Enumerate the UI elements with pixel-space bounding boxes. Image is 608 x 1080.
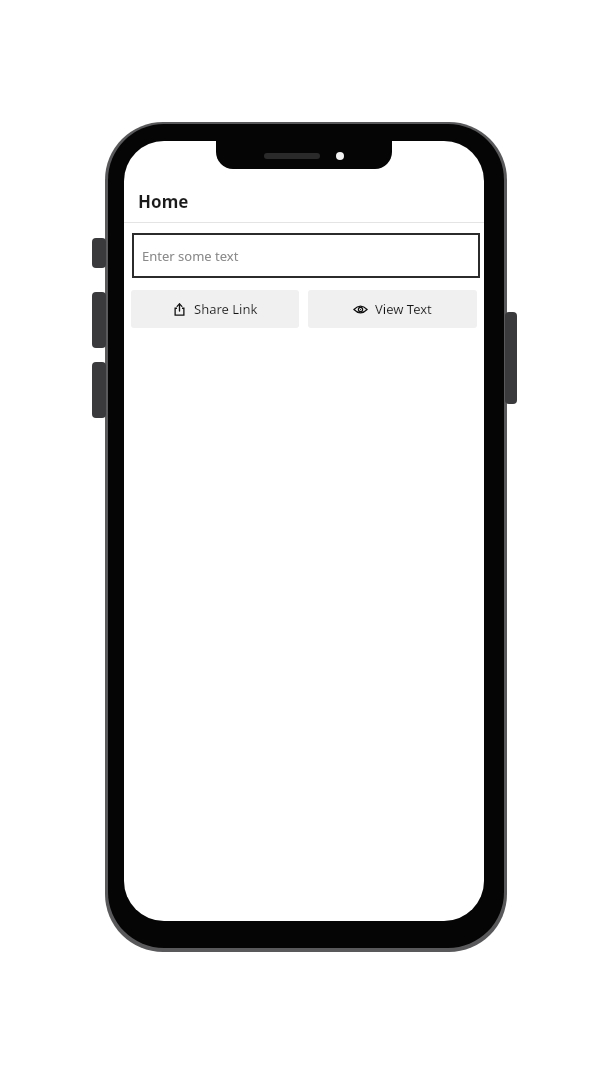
button[interactable]: View Text bbox=[308, 290, 477, 328]
button[interactable]: Share bbox=[131, 290, 299, 328]
staticText: View Text bbox=[375, 300, 432, 318]
button[interactable]: Enter some text bbox=[132, 233, 480, 278]
staticText: Share Link bbox=[194, 300, 258, 318]
other: View Text bbox=[353, 302, 368, 317]
staticText: Home bbox=[138, 190, 189, 213]
other: Share bbox=[172, 302, 187, 317]
staticText: Enter some text bbox=[142, 247, 239, 265]
